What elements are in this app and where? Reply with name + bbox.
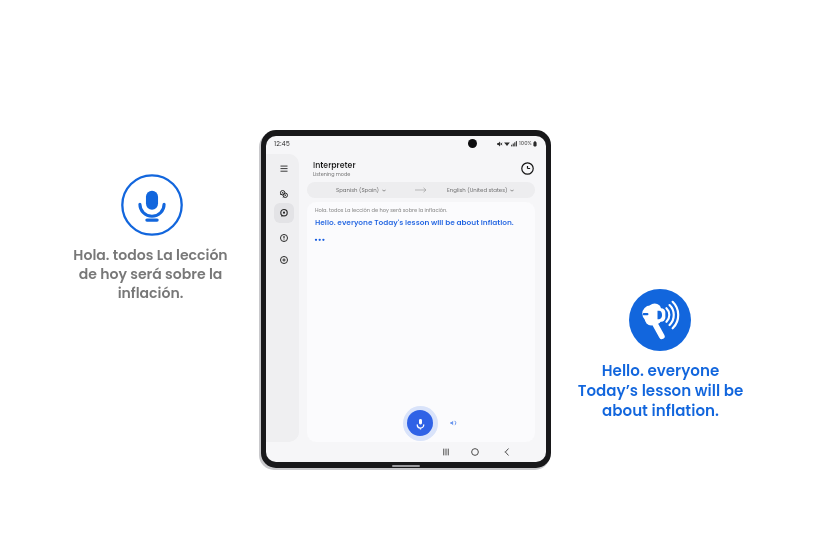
button[interactable]: Spanish (Spain) [307, 182, 415, 198]
staticText: Hola. todos La lección de hoy será sobre… [315, 207, 448, 214]
button[interactable]: Info [275, 229, 293, 247]
button[interactable]: Microphone [121, 174, 183, 236]
button[interactable]: Recents [439, 445, 453, 459]
button[interactable]: Back [500, 445, 514, 459]
button[interactable]: Record [407, 410, 433, 436]
button[interactable]: Add [275, 251, 293, 269]
button[interactable]: Speaker [449, 419, 457, 427]
staticText: Hello. everyone Today’s lesson will be a… [553, 360, 768, 421]
staticText: Hola. todos La lección de hoy será sobre… [43, 245, 258, 303]
button[interactable]: History [521, 162, 534, 175]
button[interactable]: Interpreter [274, 203, 294, 223]
button[interactable]: English (United states) [426, 182, 535, 198]
button[interactable]: Translate [275, 185, 293, 203]
staticText: Listening mode [313, 171, 351, 178]
button[interactable]: Earbuds [629, 289, 691, 351]
staticText: Hello. everyone Today's lesson will be a… [315, 217, 514, 227]
staticText: Interpreter [313, 160, 356, 171]
button[interactable]: Home [468, 445, 482, 459]
staticText: Spanish (Spain) [336, 186, 380, 194]
staticText: English (United states) [447, 186, 508, 194]
button[interactable]: Menu [275, 159, 293, 177]
staticText: 12:45 [274, 139, 290, 148]
staticText: 100% [519, 140, 532, 147]
